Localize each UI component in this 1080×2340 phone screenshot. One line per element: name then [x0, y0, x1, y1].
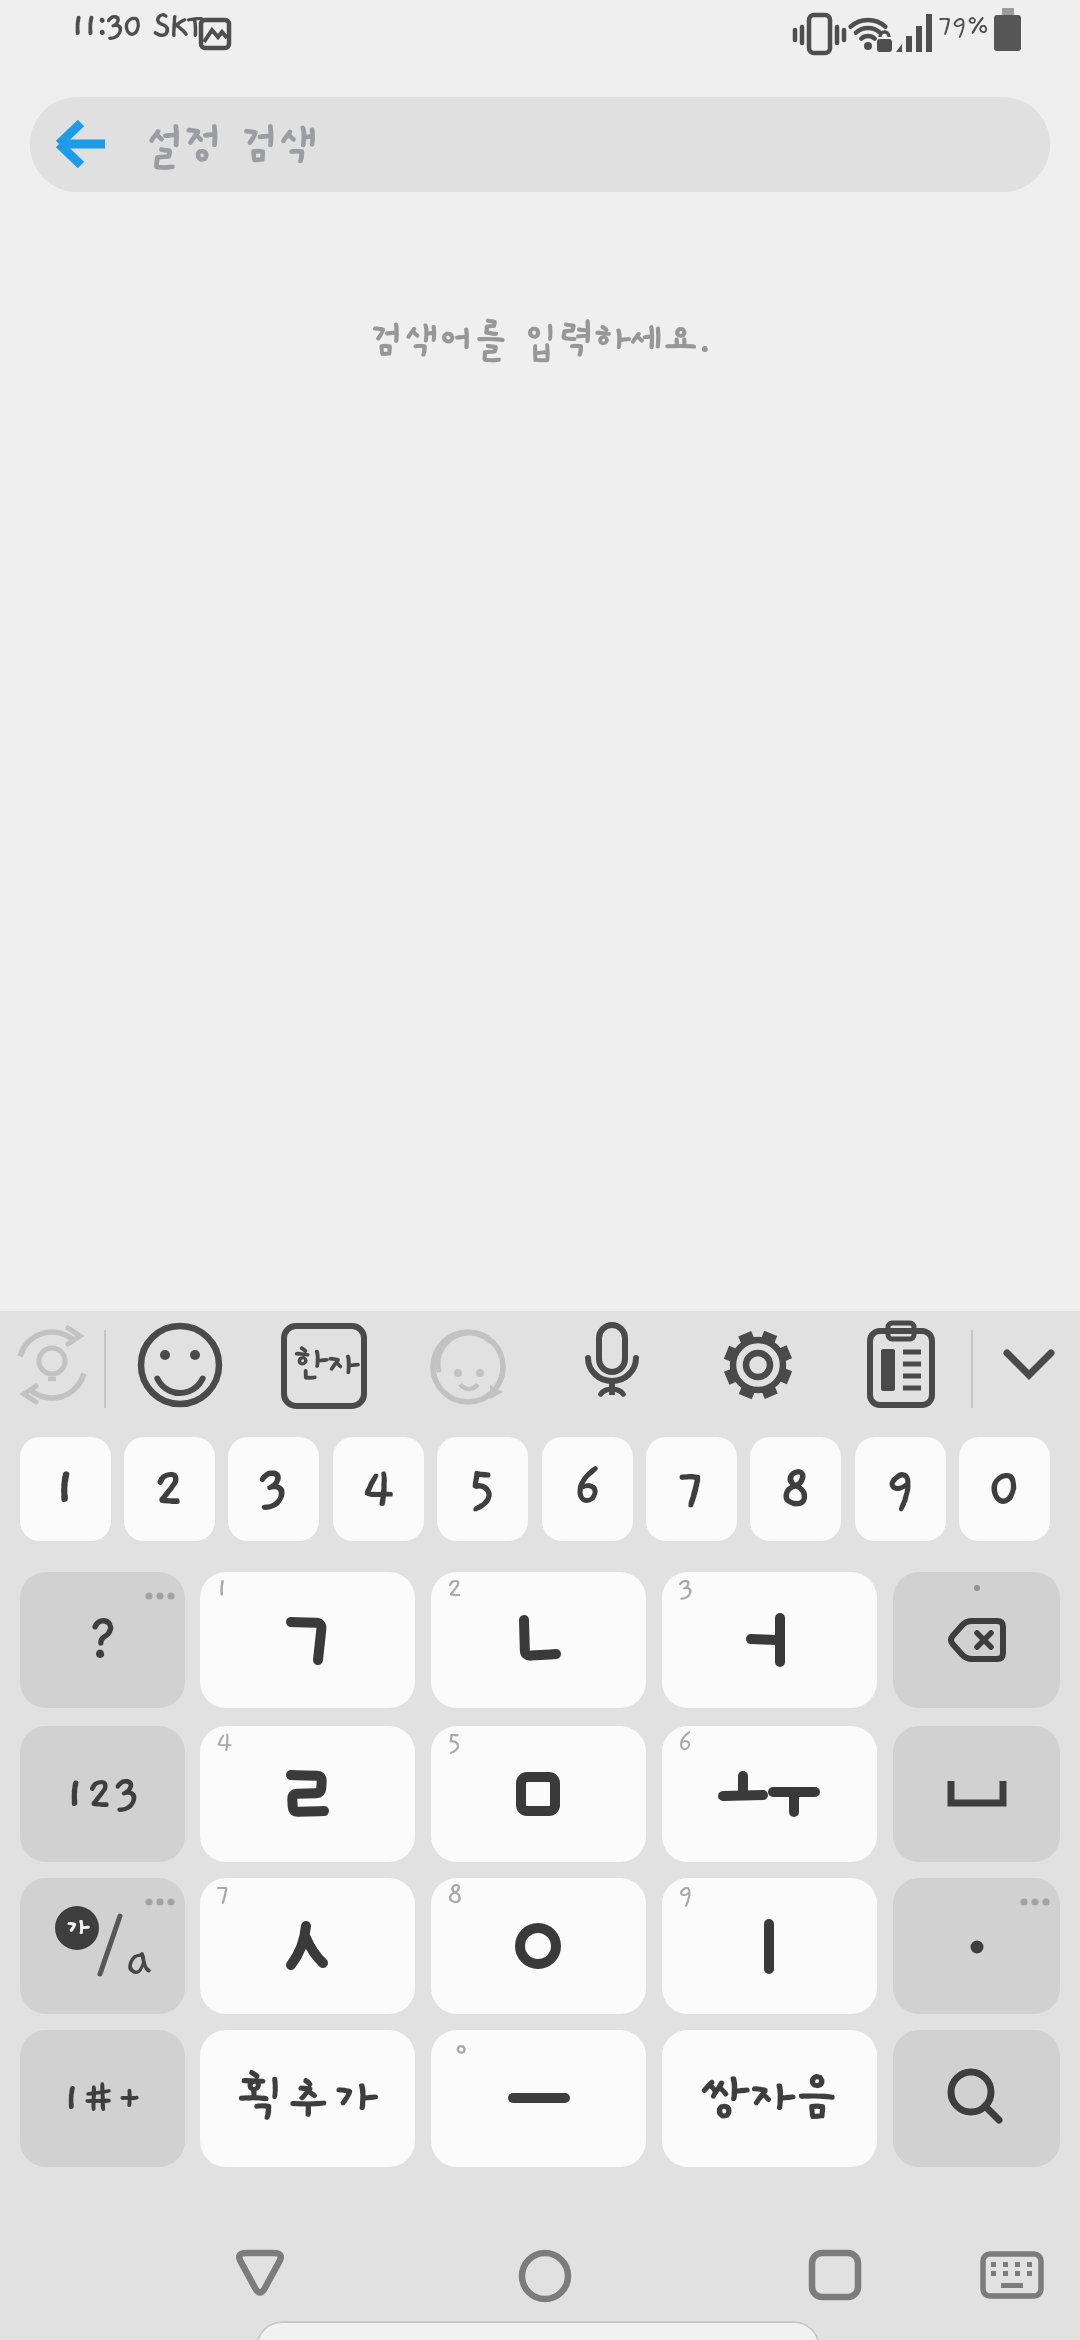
button[interactable]: 1: [200, 1572, 415, 1708]
staticText: 설정 검색: [144, 120, 317, 170]
staticText: 2: [447, 1574, 463, 1604]
staticText: 3: [678, 1574, 694, 1604]
staticText: 123: [64, 1768, 141, 1820]
staticText: 4: [361, 1458, 396, 1520]
button[interactable]: 2: [431, 1572, 646, 1708]
button[interactable]: [893, 1572, 1060, 1708]
button[interactable]: 0: [959, 1437, 1050, 1541]
button[interactable]: 6: [662, 1726, 877, 1862]
staticText: 가: [65, 1913, 90, 1943]
button[interactable]: 가: [20, 1878, 185, 2014]
button[interactable]: 7: [200, 1878, 415, 2014]
button[interactable]: [893, 2030, 1060, 2167]
button[interactable]: 2: [124, 1437, 215, 1541]
staticText: a: [125, 1931, 153, 1989]
button[interactable]: 1#+: [20, 2030, 185, 2167]
button[interactable]: [849, 13, 893, 53]
button[interactable]: [793, 13, 845, 57]
button[interactable]: 획추가: [200, 2030, 415, 2167]
button[interactable]: [716, 1323, 800, 1407]
button[interactable]: 한자: [281, 1323, 367, 1409]
button[interactable]: [866, 1321, 936, 1409]
staticText: ㅇ: [447, 2032, 475, 2066]
button[interactable]: [138, 1323, 222, 1407]
staticText: 획추가: [238, 2070, 378, 2128]
staticText: 3: [257, 1458, 290, 1520]
button[interactable]: 5: [431, 1726, 646, 1862]
staticText: 9: [678, 1880, 694, 1910]
button[interactable]: 1: [20, 1437, 111, 1541]
button[interactable]: 쌍자음: [662, 2030, 877, 2167]
button[interactable]: 8: [750, 1437, 841, 1541]
button[interactable]: [893, 1726, 1060, 1862]
button[interactable]: 7: [646, 1437, 737, 1541]
staticText: 쌍자음: [700, 2070, 840, 2128]
staticText: 9: [885, 1458, 917, 1520]
staticText: 6: [678, 1728, 693, 1758]
button[interactable]: 8: [431, 1878, 646, 2014]
button[interactable]: [981, 2252, 1043, 2298]
button[interactable]: 3: [662, 1572, 877, 1708]
staticText: 79%: [938, 10, 989, 42]
button[interactable]: 9: [662, 1878, 877, 2014]
button[interactable]: ?: [20, 1572, 185, 1708]
button[interactable]: 123: [20, 1726, 185, 1862]
button[interactable]: [1003, 1349, 1055, 1381]
staticText: 1: [216, 1574, 229, 1604]
staticText: 5: [467, 1458, 498, 1520]
button[interactable]: [519, 2250, 571, 2302]
staticText: 5: [447, 1728, 462, 1758]
staticText: 0: [987, 1458, 1023, 1520]
button[interactable]: [428, 1323, 512, 1407]
staticText: 8: [447, 1880, 464, 1910]
staticText: 11:30 SKT: [70, 8, 201, 46]
button[interactable]: 설정 검색: [30, 97, 1050, 192]
button[interactable]: [578, 1323, 646, 1411]
staticText: 1: [52, 1458, 79, 1520]
button[interactable]: 6: [542, 1437, 633, 1541]
button[interactable]: [199, 18, 233, 50]
staticText: 6: [573, 1458, 603, 1520]
staticText: 4: [216, 1728, 233, 1758]
button[interactable]: [994, 8, 1022, 52]
button[interactable]: 5: [437, 1437, 528, 1541]
button[interactable]: ㅇ: [431, 2030, 646, 2167]
button[interactable]: 4: [333, 1437, 424, 1541]
button[interactable]: 3: [228, 1437, 319, 1541]
staticText: 7: [677, 1458, 707, 1520]
button[interactable]: [809, 2250, 861, 2300]
staticText: 2: [153, 1458, 186, 1520]
staticText: 1#+: [62, 2076, 144, 2122]
staticText: 검색어를 입력하세요.: [369, 319, 711, 363]
staticText: 한자: [293, 1345, 356, 1387]
staticText: ?: [86, 1609, 120, 1671]
staticText: 7: [216, 1880, 231, 1910]
staticText: 8: [779, 1458, 813, 1520]
button[interactable]: [233, 2250, 287, 2300]
button[interactable]: [896, 12, 934, 54]
button[interactable]: 4: [200, 1726, 415, 1862]
button[interactable]: [12, 1325, 92, 1405]
button[interactable]: [893, 1878, 1060, 2014]
button[interactable]: 9: [855, 1437, 946, 1541]
